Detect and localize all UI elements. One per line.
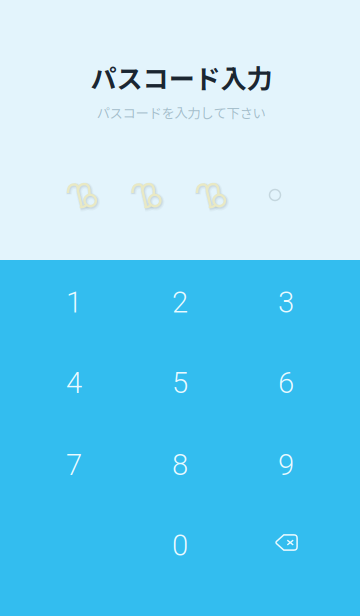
button[interactable]: 1: [24, 264, 124, 340]
button[interactable]: 6: [236, 345, 336, 421]
button[interactable]: 2: [130, 264, 230, 340]
staticText: 7: [66, 448, 82, 482]
button[interactable]: 8: [130, 427, 230, 503]
staticText: 0: [172, 528, 188, 563]
staticText: 3: [278, 285, 294, 320]
button[interactable]: 3: [236, 264, 336, 340]
button[interactable]: Delete: [236, 504, 336, 580]
staticText: 5: [172, 366, 188, 400]
staticText: パスコード入力: [90, 58, 272, 96]
button[interactable]: 0: [130, 507, 230, 583]
staticText: 9: [278, 448, 294, 482]
staticText: 1: [66, 285, 82, 320]
staticText: パスコードを入力して下さい: [96, 103, 265, 122]
button[interactable]: 9: [236, 427, 336, 503]
button[interactable]: 5: [130, 345, 230, 421]
button[interactable]: 7: [24, 427, 124, 503]
staticText: 6: [278, 366, 294, 400]
button[interactable]: 4: [24, 345, 124, 421]
staticText: 4: [66, 366, 82, 400]
staticText: 8: [172, 448, 188, 482]
staticText: 2: [172, 285, 188, 320]
